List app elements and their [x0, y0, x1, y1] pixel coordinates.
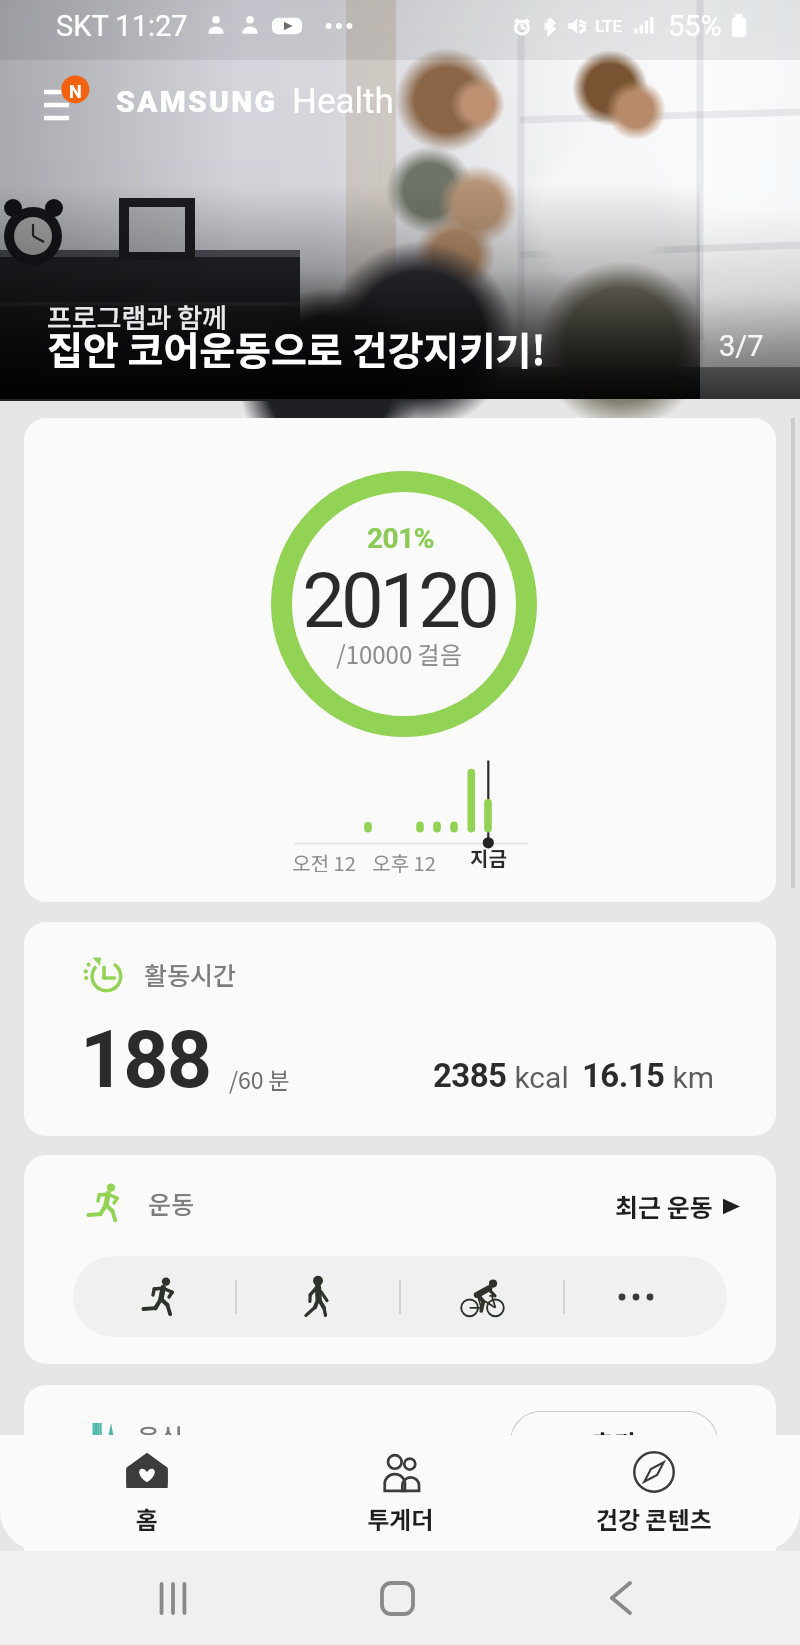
staticText: 55% [668, 9, 722, 43]
staticText: kcal [507, 1060, 569, 1095]
staticText: 188 [80, 1014, 210, 1107]
staticText: /10000 걸음 [336, 636, 462, 671]
button[interactable]: Cycling [401, 1256, 563, 1337]
button[interactable]: 음식 [24, 1385, 776, 1594]
button[interactable]: 추가 [510, 1411, 718, 1473]
button[interactable]: Home [337, 1551, 457, 1645]
button[interactable]: 201% [24, 418, 776, 902]
staticText: LTE [595, 16, 623, 36]
staticText: 2385 [433, 1056, 507, 1095]
staticText: 오전 12 [292, 848, 356, 877]
staticText: SAMSUNG [116, 84, 278, 119]
staticText: 오후 12 [372, 848, 436, 877]
staticText: N [69, 81, 82, 102]
button[interactable]: 최근 운동 [615, 1188, 740, 1224]
button[interactable]: Back [561, 1551, 681, 1645]
staticText: Health [292, 81, 394, 122]
staticText: 홈 [136, 1501, 159, 1536]
staticText: 프로그램과 함께 [47, 297, 227, 336]
staticText: 지금 [470, 843, 507, 872]
button[interactable]: Menu [42, 78, 94, 130]
button[interactable]: Recent apps [113, 1551, 233, 1645]
staticText: 투게더 [367, 1501, 434, 1536]
staticText: 3/7 [719, 329, 764, 363]
button[interactable]: Running [73, 1256, 235, 1337]
staticText: 16.15 [582, 1056, 665, 1095]
staticText: SKT 11:27 [56, 9, 188, 43]
staticText: 운동 [148, 1185, 195, 1221]
button[interactable]: 건강 콘텐츠 [527, 1435, 780, 1551]
staticText: /60 분 [229, 1062, 290, 1095]
staticText: 추가 [591, 1424, 638, 1460]
button[interactable]: 운동 [24, 1155, 776, 1364]
staticText: 건강 콘텐츠 [596, 1501, 712, 1536]
staticText: 최근 운동 [615, 1188, 713, 1224]
staticText: 음식 [137, 1418, 184, 1454]
staticText: km [665, 1060, 714, 1095]
button[interactable]: 활동시간 [24, 922, 776, 1136]
button[interactable]: 홈 [20, 1435, 274, 1551]
button[interactable]: More exercises [565, 1256, 727, 1337]
button[interactable]: SKT 11:27 [0, 0, 800, 399]
button[interactable]: Walking [237, 1256, 399, 1337]
button[interactable]: 투게더 [274, 1435, 527, 1551]
staticText: 20120 [302, 556, 496, 645]
staticText: 201% [367, 522, 434, 555]
staticText: 활동시간 [144, 956, 237, 992]
staticText: 집안 코어운동으로 건강지키기! [47, 320, 546, 376]
